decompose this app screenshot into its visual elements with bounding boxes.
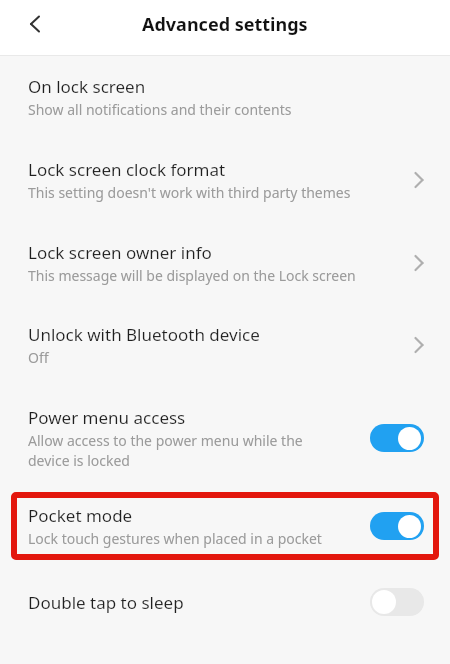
staticText: Pocket mode xyxy=(28,504,133,527)
button[interactable]: Unlock with Bluetooth device xyxy=(0,304,450,386)
button[interactable]: Lock screen owner info xyxy=(0,221,450,304)
staticText: Show all notifications and their content… xyxy=(28,100,292,119)
staticText: Double tap to sleep xyxy=(28,591,184,614)
button[interactable] xyxy=(370,424,424,452)
staticText: Allow access to the power menu while the… xyxy=(28,431,303,470)
staticText: Lock screen clock format xyxy=(28,158,226,181)
staticText: Unlock with Bluetooth device xyxy=(28,323,260,346)
staticText: Power menu access xyxy=(28,406,186,429)
staticText: This message will be displayed on the Lo… xyxy=(28,266,356,285)
button[interactable] xyxy=(20,9,50,39)
staticText: Lock screen owner info xyxy=(28,241,212,264)
button[interactable]: On lock screen xyxy=(0,56,450,138)
button[interactable]: Lock screen clock format xyxy=(0,138,450,221)
button[interactable] xyxy=(370,512,424,540)
button[interactable]: Pocket mode xyxy=(0,489,450,562)
staticText: On lock screen xyxy=(28,75,146,98)
button[interactable]: Double tap to sleep xyxy=(0,562,450,642)
button[interactable] xyxy=(370,588,424,616)
staticText: Advanced settings xyxy=(142,12,308,37)
staticText: Off xyxy=(28,348,49,367)
staticText: Lock touch gestures when placed in a poc… xyxy=(28,529,322,548)
staticText: This setting doesn't work with third par… xyxy=(28,183,351,202)
button[interactable]: Power menu access xyxy=(0,386,450,489)
